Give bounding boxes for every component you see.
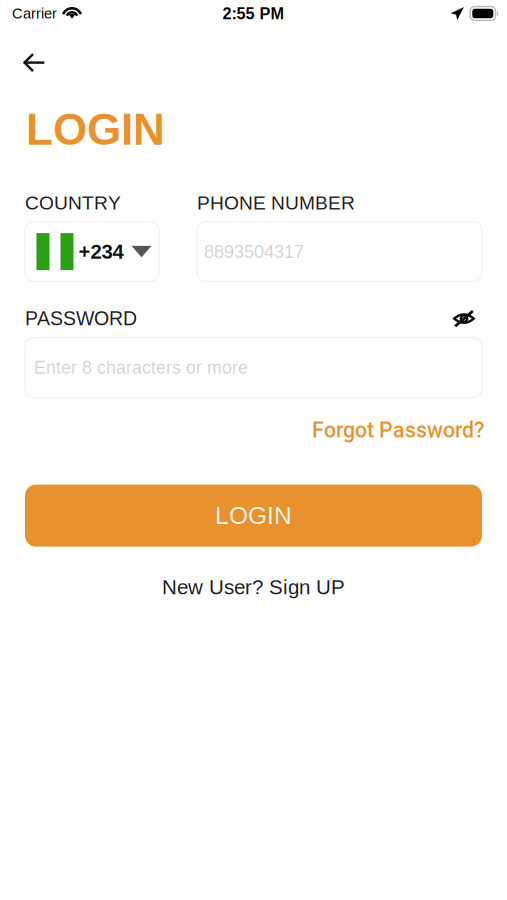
staticText: PASSWORD xyxy=(25,308,137,329)
staticText: COUNTRY xyxy=(25,192,121,214)
staticText: New User? Sign UP xyxy=(162,576,345,598)
staticText: LOGIN xyxy=(215,502,292,529)
button[interactable]: New User? Sign UP xyxy=(162,569,345,605)
staticText: Forgot Password? xyxy=(312,418,484,443)
staticText: +234 xyxy=(78,240,123,263)
button[interactable]: Back xyxy=(0,43,59,82)
button[interactable]: LOGIN xyxy=(25,485,482,547)
staticText: PHONE NUMBER xyxy=(197,192,355,214)
staticText: Carrier xyxy=(12,5,57,22)
staticText: Enter 8 characters or more xyxy=(34,358,248,377)
staticText: 8893504317 xyxy=(204,241,304,262)
button[interactable]: Forgot Password? xyxy=(312,418,484,443)
staticText: LOGIN xyxy=(26,105,165,154)
button[interactable]: +234 xyxy=(25,222,159,282)
staticText: 2:55 PM xyxy=(222,4,284,23)
button[interactable]: Show password xyxy=(453,306,482,332)
